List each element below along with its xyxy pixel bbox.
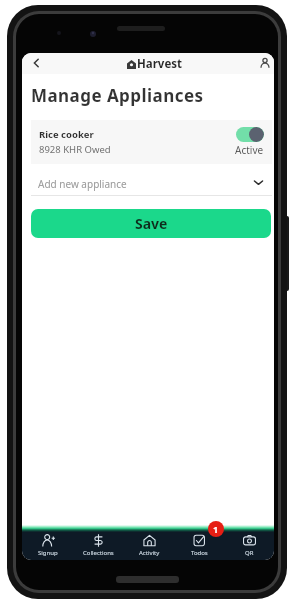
staticText: Add new appliance <box>38 177 127 191</box>
staticText: Collections <box>83 549 114 557</box>
staticText: 1 <box>213 523 219 535</box>
staticText: Todos <box>191 549 208 557</box>
staticText: Save <box>135 214 168 233</box>
staticText: Manage Appliances <box>31 84 204 107</box>
button[interactable]: Add new appliance <box>31 173 272 196</box>
button[interactable]: Save <box>31 209 271 238</box>
button[interactable]: QR <box>224 532 274 560</box>
button[interactable]: Active toggle <box>236 127 264 142</box>
staticText: Rice cooker <box>39 128 94 141</box>
button[interactable]: Collections <box>73 532 124 560</box>
staticText: Active <box>235 143 264 157</box>
button[interactable]: Signup <box>22 532 73 560</box>
button[interactable]: Todos <box>174 532 224 560</box>
button[interactable]: Back <box>26 53 46 73</box>
staticText: Signup <box>38 549 58 557</box>
button[interactable]: Rice cooker <box>31 120 272 164</box>
staticText: QR <box>245 549 254 557</box>
staticText: 8928 KHR Owed <box>39 143 111 156</box>
staticText: Activity <box>139 549 160 557</box>
button[interactable]: Activity <box>124 532 174 560</box>
staticText: Harvest <box>137 56 183 72</box>
button[interactable]: Profile <box>255 53 274 73</box>
